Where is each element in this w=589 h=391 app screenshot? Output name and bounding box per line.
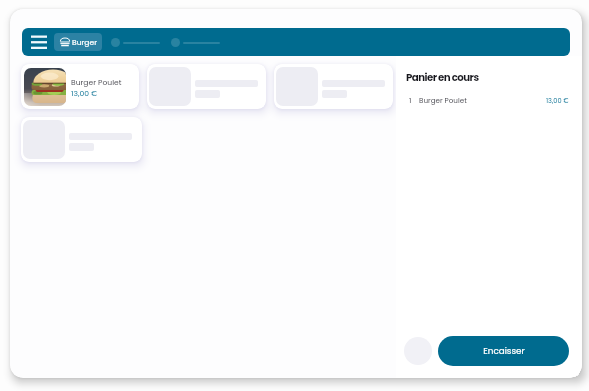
staticText: Panier en cours <box>406 70 479 84</box>
staticText: Encaisser <box>483 345 525 357</box>
button[interactable]: 1 <box>404 94 569 106</box>
staticText: 13,00 € <box>546 96 569 105</box>
button[interactable]: Menu <box>28 31 50 53</box>
staticText: Burger Poulet <box>419 95 467 105</box>
staticText: Burger Poulet <box>71 77 122 88</box>
button[interactable]: Encaisser <box>438 336 569 366</box>
staticText: Burger <box>72 37 98 48</box>
button[interactable]: Burger <box>54 33 102 51</box>
staticText: 13,00 € <box>71 88 98 99</box>
staticText: 1 <box>409 95 412 105</box>
button[interactable]: Options <box>404 337 432 365</box>
button[interactable]: Burger Poulet <box>21 64 139 109</box>
